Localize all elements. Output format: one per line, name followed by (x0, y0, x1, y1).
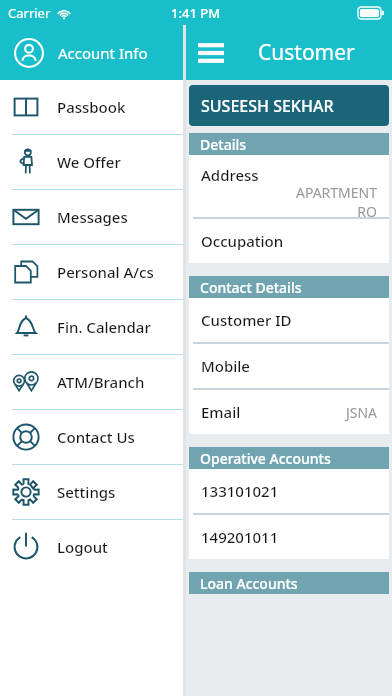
staticText: Logout (57, 537, 108, 557)
staticText: Operative Accounts (200, 449, 331, 468)
button[interactable]: Mobile (189, 344, 389, 388)
button[interactable]: ATM/Branch (0, 355, 183, 409)
button[interactable]: Occupation (189, 219, 389, 263)
button[interactable]: Messages (0, 190, 183, 244)
button[interactable]: Address (189, 155, 389, 217)
staticText: Contact Details (200, 278, 302, 297)
button[interactable]: Logout (0, 520, 183, 574)
button[interactable]: Customer ID (189, 298, 389, 342)
staticText: Passbook (57, 97, 126, 117)
staticText: Account Info (58, 43, 148, 63)
staticText: Contact Us (57, 427, 135, 447)
button[interactable]: Account Info (0, 25, 183, 80)
staticText: JSNA (345, 403, 377, 422)
staticText: 133101021 (201, 481, 279, 501)
button[interactable]: Contact Us (0, 410, 183, 464)
staticText: Settings (57, 482, 116, 502)
button[interactable]: Open navigation menu (186, 28, 236, 78)
staticText: 1:41 PM (171, 4, 221, 22)
staticText: ATM/Branch (57, 372, 145, 392)
staticText: Occupation (201, 231, 284, 251)
button[interactable]: Fin. Calendar (0, 300, 183, 354)
button[interactable]: Personal A/cs (0, 245, 183, 299)
staticText: Messages (57, 207, 128, 227)
button[interactable]: 149201011 (189, 515, 389, 559)
staticText: We Offer (57, 152, 121, 172)
staticText: Customer Info (258, 38, 392, 67)
button[interactable]: SUSEESH SEKHAR E(10203 (189, 85, 389, 126)
staticText: RO (357, 202, 377, 217)
staticText: APARTMENT (295, 183, 377, 202)
staticText: Fin. Calendar (57, 317, 151, 337)
staticText: Mobile (201, 356, 250, 376)
staticText: Carrier (8, 4, 51, 22)
button[interactable]: Passbook (0, 80, 183, 134)
staticText: Loan Accounts (200, 574, 298, 593)
staticText: Details (200, 135, 247, 154)
staticText: Personal A/cs (57, 262, 154, 282)
button[interactable]: 133101021 (189, 469, 389, 513)
button[interactable]: Settings (0, 465, 183, 519)
staticText: Address (201, 165, 259, 185)
button[interactable]: Email (189, 390, 389, 434)
staticText: 149201011 (201, 527, 279, 547)
staticText: Email (201, 402, 241, 422)
staticText: SUSEESH SEKHAR E(10203 (201, 95, 389, 117)
staticText: Customer ID (201, 310, 292, 330)
button[interactable]: We Offer (0, 135, 183, 189)
